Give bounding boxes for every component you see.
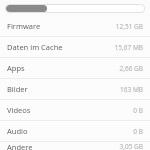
staticText: 0 B <box>133 127 143 136</box>
staticText: 2,66 GB <box>119 64 143 73</box>
button[interactable]: Videos <box>0 100 150 120</box>
staticText: Videos <box>7 105 31 115</box>
staticText: Bilder <box>7 84 28 94</box>
staticText: Daten im Cache <box>7 42 63 52</box>
staticText: 163 MB <box>120 85 143 94</box>
staticText: 0 B <box>133 106 143 115</box>
staticText: Andere <box>7 142 33 150</box>
staticText: Firmware <box>7 21 41 31</box>
button[interactable]: Andere <box>0 142 150 150</box>
button[interactable]: Audio <box>0 121 150 141</box>
staticText: 15,67 MB <box>114 43 143 52</box>
staticText: Apps <box>7 63 25 73</box>
button[interactable]: Bilder <box>0 79 150 99</box>
button[interactable]: Apps <box>0 58 150 78</box>
button[interactable]: Daten im Cache <box>0 37 150 57</box>
staticText: Audio <box>7 126 28 136</box>
button[interactable]: Firmware <box>0 16 150 36</box>
staticText: 3,05 GB <box>119 142 143 150</box>
other: Speichernutzung <box>0 0 150 16</box>
staticText: 12,51 GB <box>115 22 143 31</box>
